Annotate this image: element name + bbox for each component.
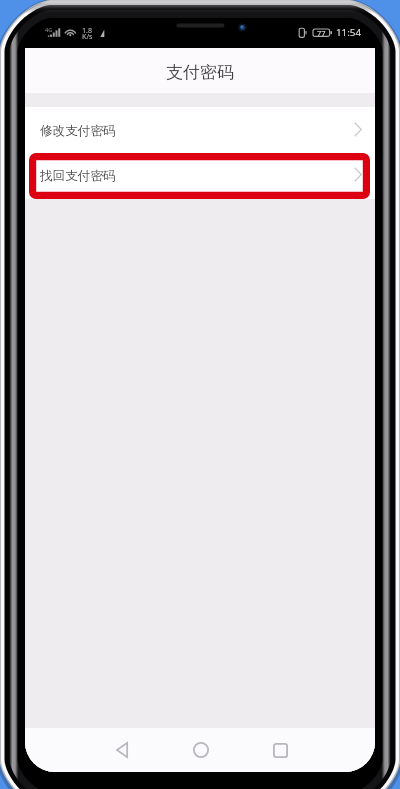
button[interactable]: Back	[99, 728, 145, 772]
button[interactable]: Home	[178, 728, 224, 772]
staticText: 支付密码	[166, 62, 234, 83]
staticText: 4G	[45, 26, 53, 33]
staticText: 找回支付密码	[40, 168, 116, 184]
staticText: 11:54	[336, 26, 362, 39]
staticText: 77	[317, 28, 326, 38]
staticText: K/s	[82, 31, 93, 41]
button[interactable]: 修改支付密码	[25, 107, 375, 152]
button[interactable]: Recent apps	[257, 728, 303, 772]
button[interactable]: 找回支付密码	[25, 152, 375, 197]
staticText: 修改支付密码	[40, 123, 116, 139]
staticText: 1.8	[82, 25, 93, 35]
